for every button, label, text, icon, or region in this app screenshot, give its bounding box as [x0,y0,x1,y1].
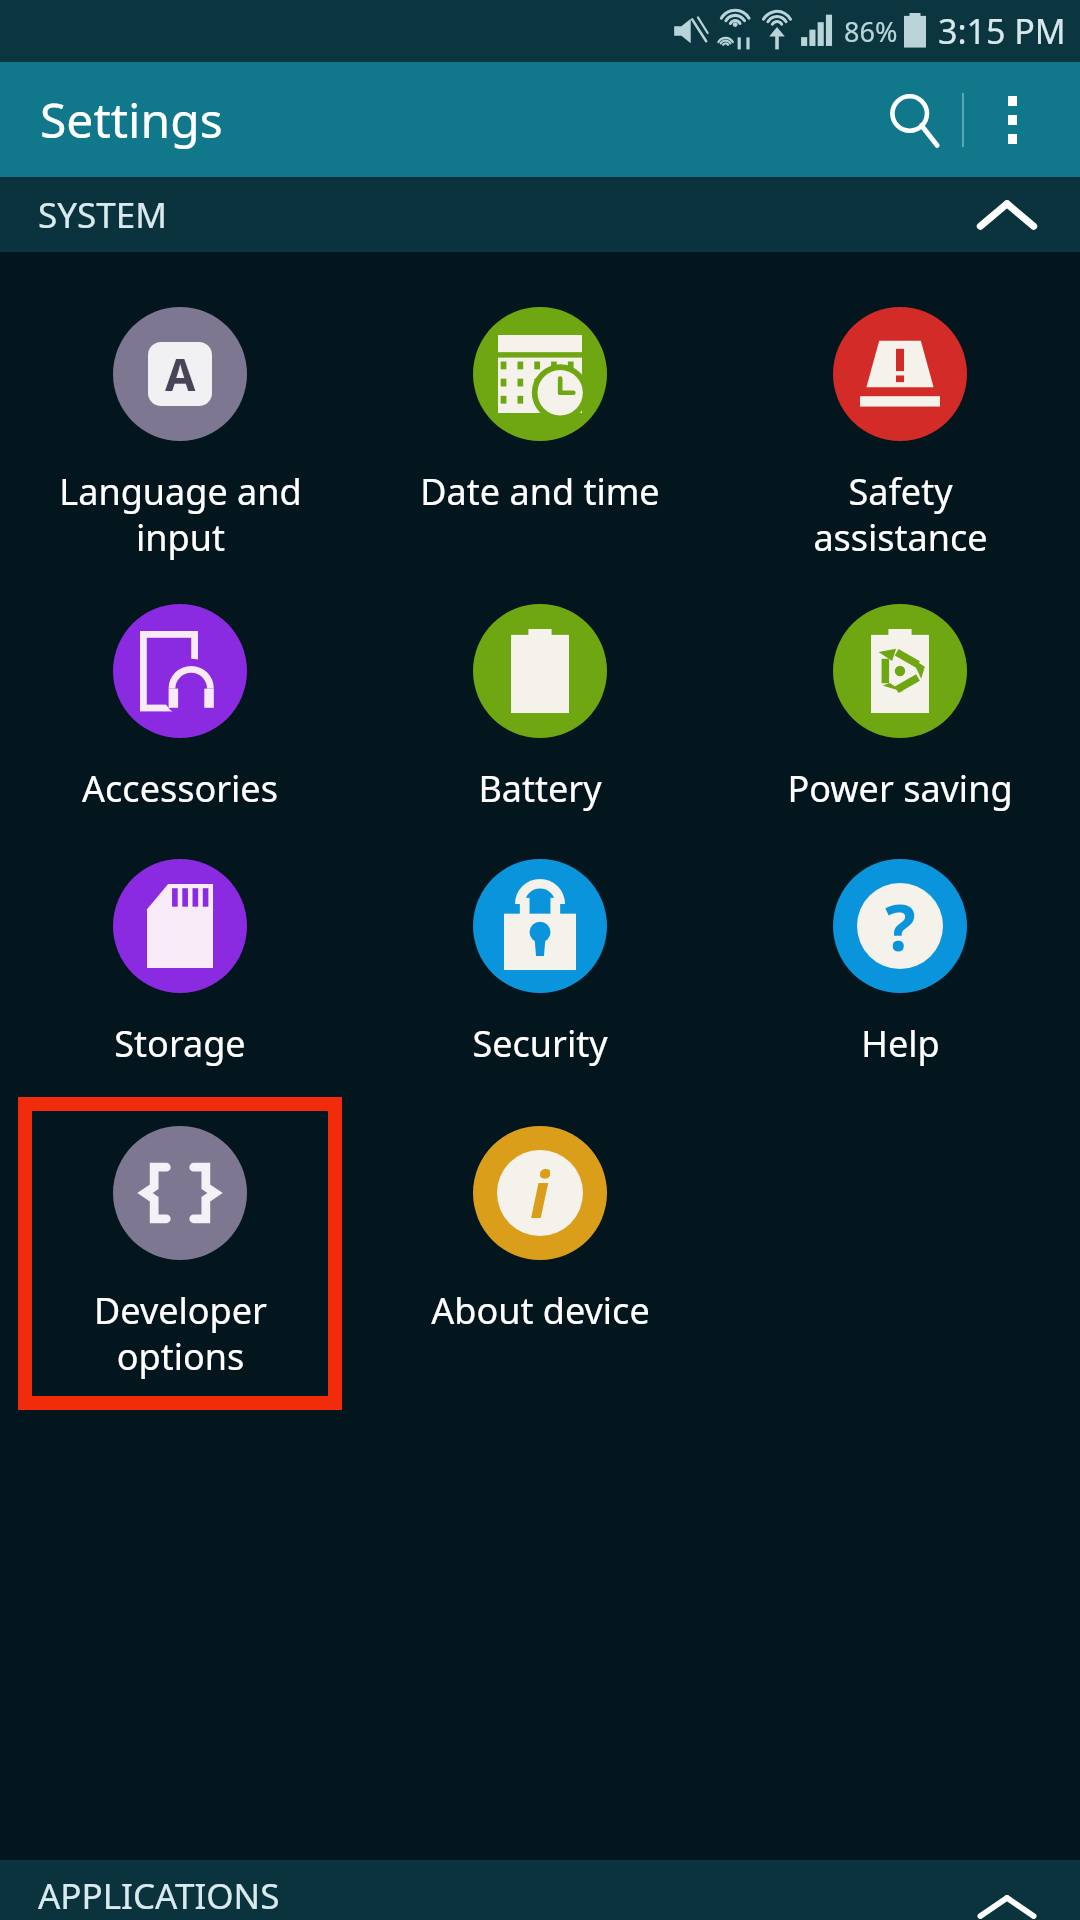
staticText: Help [861,1019,940,1068]
staticText: Date and time [420,467,660,516]
button[interactable]: Security [360,859,720,1068]
staticText: Settings [40,87,223,152]
staticText: Power saving [787,764,1013,813]
staticText: Accessories [82,764,278,813]
staticText: 3:15 PM [938,8,1066,54]
staticText: 86% [844,13,898,50]
button[interactable]: Date and time [360,307,720,516]
staticText: Developer options [94,1286,267,1381]
button[interactable]: Power saving [720,604,1080,813]
button[interactable]: Storage [0,859,360,1068]
staticText: About device [431,1286,650,1335]
button[interactable]: Search [866,72,962,168]
staticText: Language and input [59,467,302,562]
button[interactable]: More options [964,72,1060,168]
staticText: Safety assistance [813,467,988,562]
staticText: Storage [114,1019,246,1068]
button[interactable]: Battery [360,604,720,813]
button[interactable]: Developer options [25,1126,335,1381]
staticText: i [530,1150,550,1236]
staticText: A [165,344,196,404]
button[interactable]: Safety assistance [720,307,1080,562]
button[interactable]: Accessories [0,604,360,813]
button[interactable]: APPLICATIONS [0,1860,1080,1920]
staticText: Battery [478,764,602,813]
button[interactable]: i [360,1126,720,1335]
staticText: SYSTEM [38,191,167,239]
button[interactable]: SYSTEM [0,177,1080,252]
staticText: Security [472,1019,608,1068]
staticText: ? [885,883,916,969]
staticText: APPLICATIONS [38,1872,280,1920]
button[interactable]: A [0,307,360,562]
button[interactable]: ? [720,859,1080,1068]
